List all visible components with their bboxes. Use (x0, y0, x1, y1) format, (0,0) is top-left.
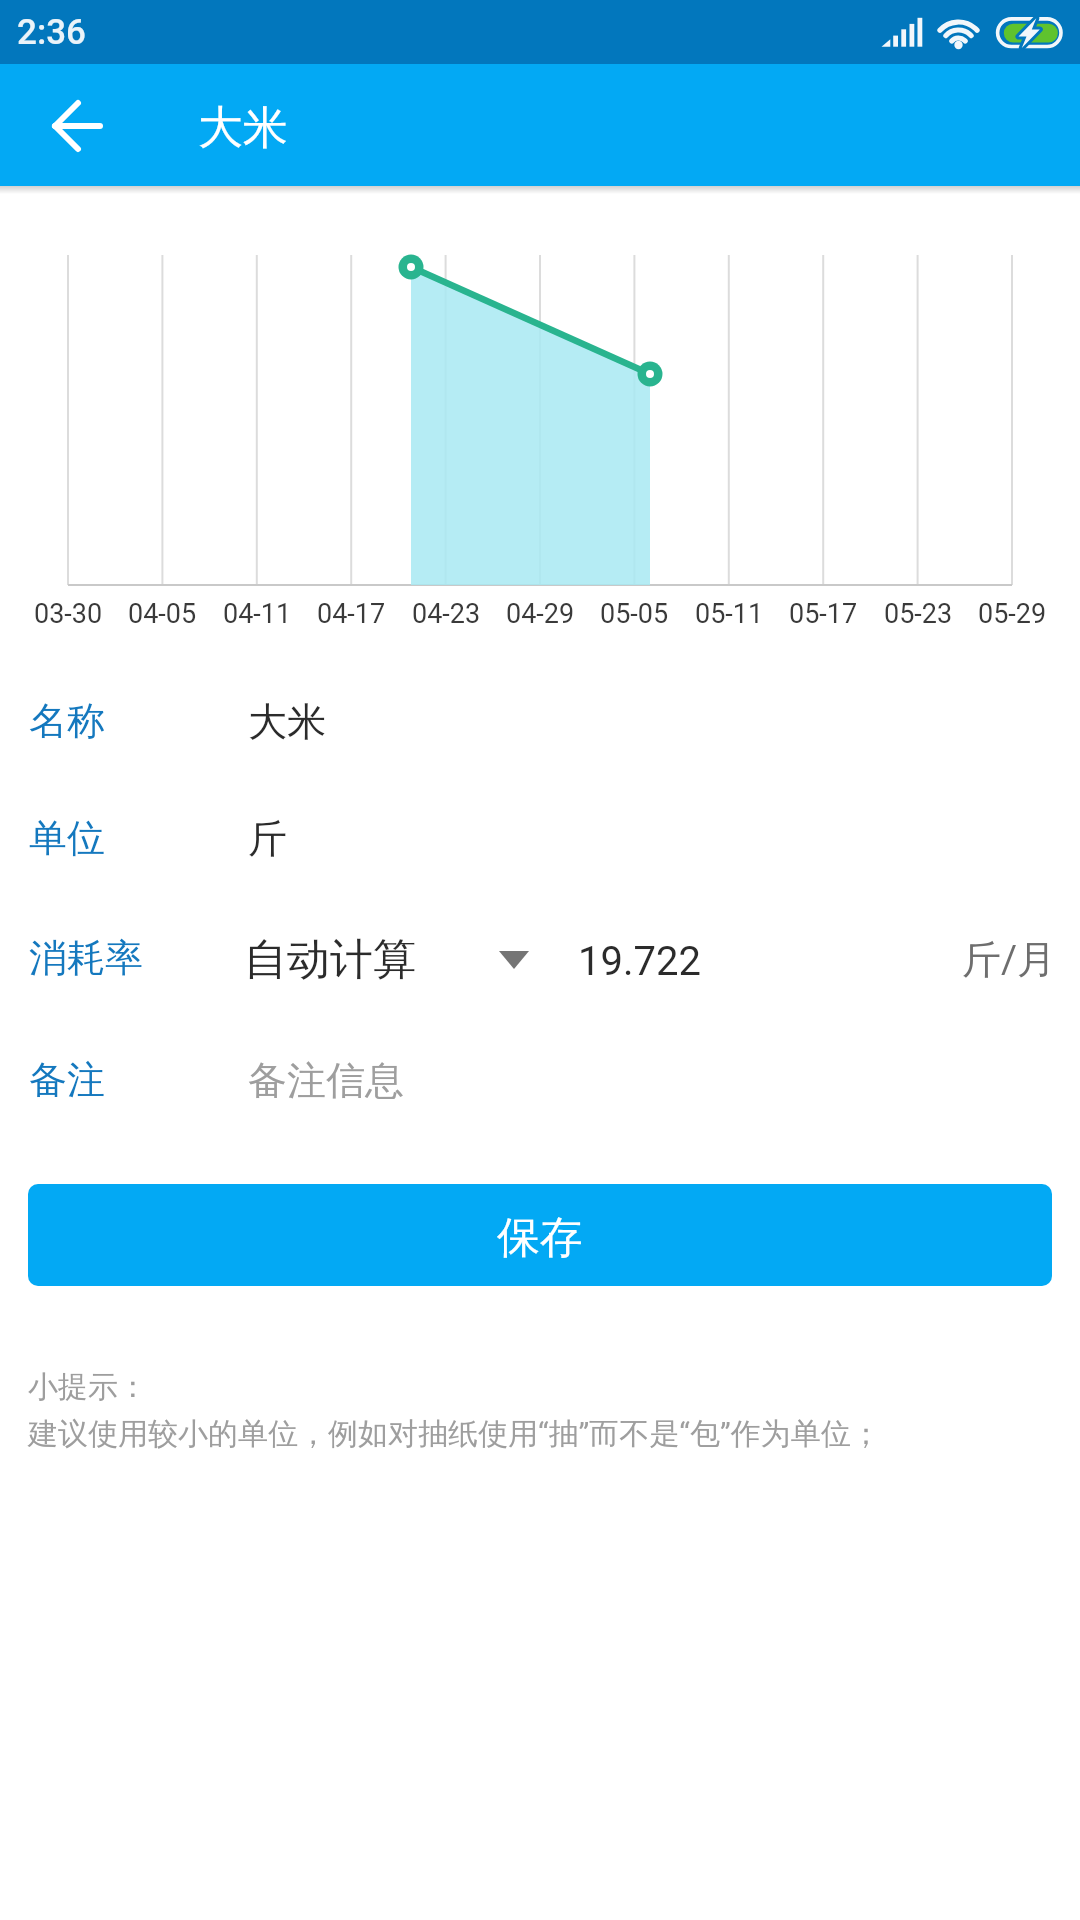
staticText: 05-29 (978, 598, 1047, 630)
staticText: 建议使用较小的单位，例如对抽纸使用“抽”而不是“包”作为单位； (28, 1415, 881, 1453)
button[interactable] (244, 800, 744, 876)
staticText: 04-23 (412, 598, 481, 630)
staticText: 大米 (198, 100, 288, 157)
staticText: 保存 (497, 1211, 583, 1265)
staticText: 单位 (29, 814, 105, 862)
staticText: 大米 (248, 697, 326, 746)
staticText: 斤/月 (962, 935, 1057, 984)
staticText: 05-05 (600, 598, 669, 630)
button[interactable] (244, 683, 744, 759)
staticText: 04-05 (128, 598, 197, 630)
staticText: 05-17 (789, 598, 858, 630)
button[interactable]: 保存 (28, 1184, 1052, 1286)
staticText: 小提示： (28, 1368, 148, 1406)
button[interactable] (244, 920, 534, 996)
staticText: 消耗率 (29, 934, 143, 982)
staticText: 04-29 (506, 598, 575, 630)
staticText: 名称 (29, 697, 105, 745)
staticText: 斤 (248, 814, 287, 863)
staticText: 04-17 (317, 598, 386, 630)
staticText: 备注 (29, 1056, 105, 1104)
staticText: 自动计算 (244, 933, 416, 987)
staticText: 05-11 (695, 598, 764, 630)
button[interactable] (560, 920, 760, 996)
staticText: 19.722 (578, 938, 701, 985)
staticText: 05-23 (884, 598, 953, 630)
staticText: 备注信息 (248, 1056, 404, 1105)
staticText: 04-11 (223, 598, 292, 630)
button[interactable] (244, 1042, 744, 1118)
button[interactable] (48, 100, 104, 152)
staticText: 2:36 (17, 12, 86, 53)
staticText: 03-30 (34, 598, 103, 630)
